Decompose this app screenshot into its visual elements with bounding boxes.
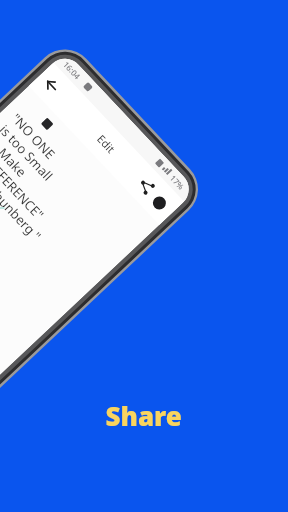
button[interactable]: Share feature introduction	[0, 0, 288, 512]
